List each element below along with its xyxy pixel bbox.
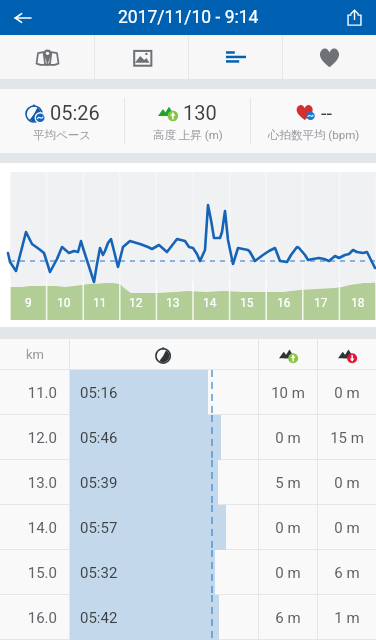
staticText: 13	[166, 296, 180, 310]
button[interactable]: 16.0	[0, 595, 376, 640]
staticText: 6 m	[259, 609, 317, 627]
staticText: 0 m	[318, 519, 376, 537]
staticText: 15 m	[318, 429, 376, 447]
staticText: 12	[129, 296, 143, 310]
staticText: 15.0	[0, 564, 57, 582]
staticText: 5 m	[259, 474, 317, 492]
button[interactable]: Share	[332, 0, 376, 35]
button[interactable]: --	[251, 89, 376, 153]
staticText: 0 m	[259, 429, 317, 447]
button[interactable]: Heart rate	[283, 35, 376, 79]
staticText: km	[26, 347, 44, 362]
staticText: 18	[351, 296, 365, 310]
button[interactable]: 05:26	[0, 89, 124, 153]
staticText: 11.0	[0, 384, 57, 402]
staticText: 16.0	[0, 609, 57, 627]
staticText: 14	[203, 296, 217, 310]
staticText: 05:32	[80, 564, 118, 582]
staticText: --	[321, 101, 333, 124]
staticText: 05:42	[80, 609, 118, 627]
staticText: 05:46	[80, 429, 118, 447]
button[interactable]: Photos	[95, 35, 188, 79]
staticText: 15	[240, 296, 254, 310]
staticText: 05:16	[80, 384, 118, 402]
staticText: 14.0	[0, 519, 57, 537]
staticText: 平均ペース	[33, 128, 92, 142]
staticText: 高度 上昇 (m)	[153, 128, 223, 142]
button[interactable]: 14.0	[0, 505, 376, 550]
staticText: 0 m	[259, 519, 317, 537]
staticText: 05:26	[50, 101, 100, 124]
staticText: 1 m	[318, 609, 376, 627]
button[interactable]: 130	[125, 89, 250, 153]
button[interactable]: 13.0	[0, 460, 376, 505]
button[interactable]: Map	[0, 35, 94, 79]
staticText: 0 m	[318, 384, 376, 402]
button[interactable]: 12.0	[0, 415, 376, 460]
staticText: 10 m	[259, 384, 317, 402]
staticText: 10	[57, 296, 71, 310]
staticText: 130	[183, 101, 217, 124]
staticText: 6 m	[318, 564, 376, 582]
staticText: 2017/11/10 - 9:14	[118, 7, 259, 28]
staticText: 12.0	[0, 429, 57, 447]
button[interactable]: Back	[0, 0, 46, 35]
staticText: 0 m	[259, 564, 317, 582]
staticText: 05:39	[80, 474, 118, 492]
staticText: 心拍数平均 (bpm)	[268, 128, 360, 142]
staticText: 11	[93, 296, 107, 310]
staticText: 16	[277, 296, 291, 310]
staticText: 9	[25, 296, 32, 310]
button[interactable]: Charts	[189, 35, 282, 79]
staticText: 05:57	[80, 519, 118, 537]
staticText: 17	[314, 296, 328, 310]
staticText: 0 m	[318, 474, 376, 492]
button[interactable]: 11.0	[0, 370, 376, 415]
button[interactable]: 15.0	[0, 550, 376, 595]
staticText: 13.0	[0, 474, 57, 492]
